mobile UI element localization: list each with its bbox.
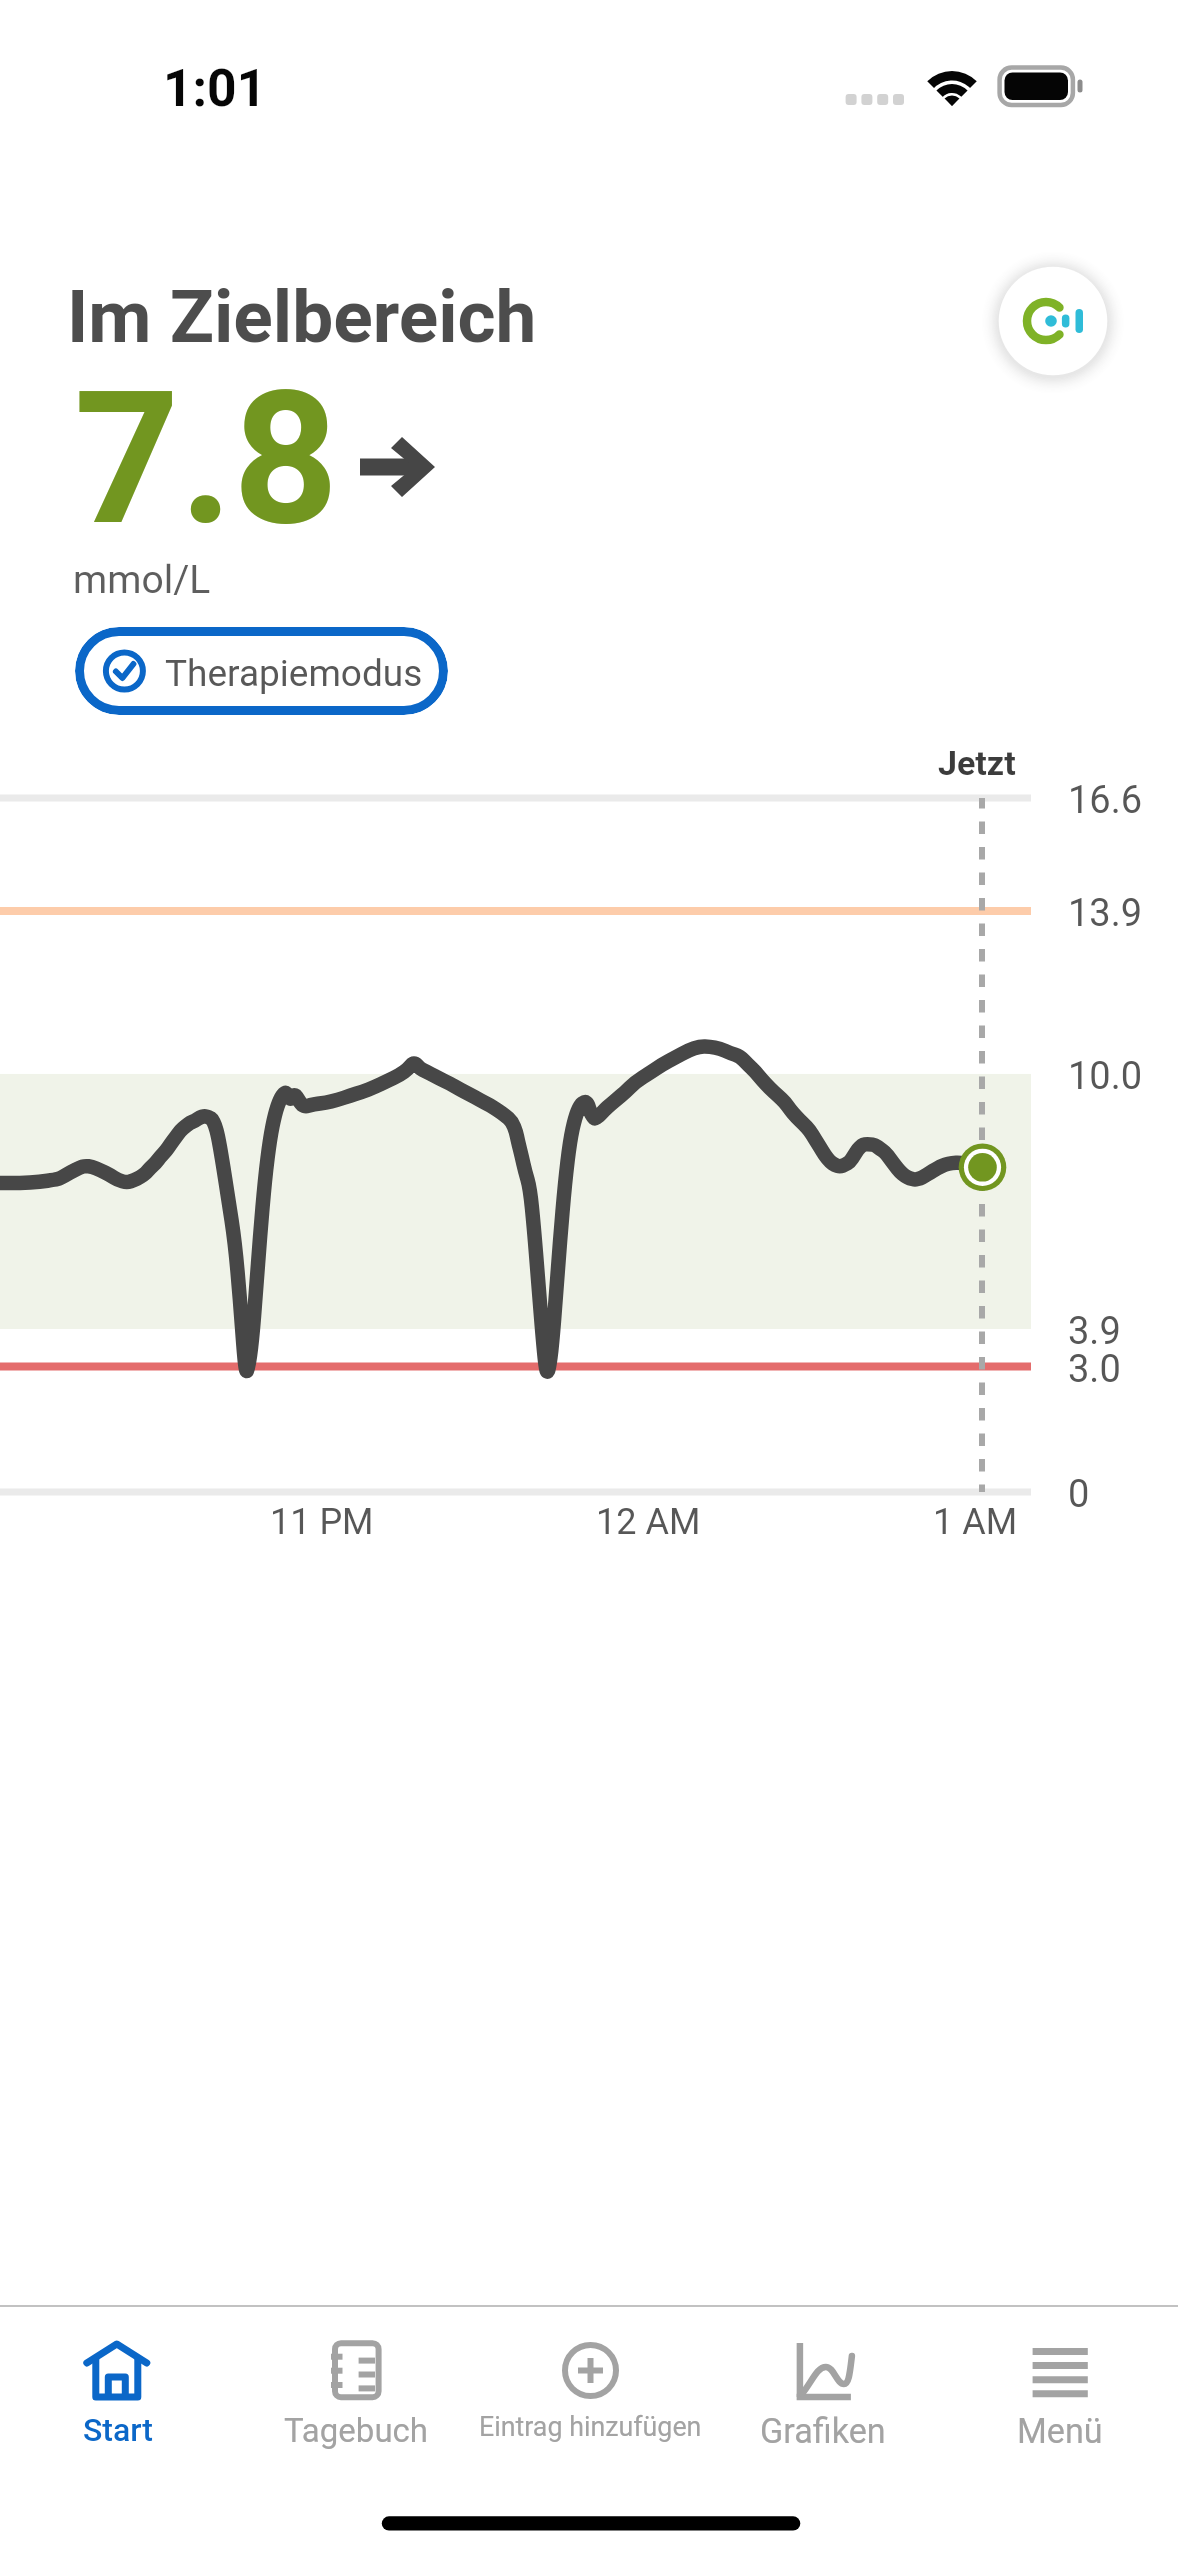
button[interactable]	[706, 2310, 938, 2476]
staticText: Menü	[1017, 2411, 1103, 2451]
staticText: Grafiken	[760, 2411, 886, 2451]
button[interactable]	[4, 2310, 236, 2476]
staticText: 12 AM	[596, 1501, 701, 1543]
staticText: mmol/L	[73, 557, 211, 603]
staticText: Therapiemodus	[165, 652, 423, 695]
staticText: 13.9	[1068, 891, 1143, 936]
button[interactable]	[75, 627, 448, 715]
button[interactable]: Sensor status	[983, 251, 1123, 391]
staticText: 1:01	[163, 58, 267, 118]
staticText: 16.6	[1068, 778, 1143, 823]
staticText: 7.8	[74, 351, 339, 567]
staticText: 3.9	[1068, 1309, 1121, 1354]
staticText: Jetzt	[938, 743, 1016, 783]
staticText: Start	[83, 2411, 153, 2449]
button[interactable]	[938, 2310, 1174, 2476]
staticText: 10.0	[1068, 1054, 1143, 1099]
staticText: 11 PM	[270, 1501, 374, 1543]
staticText: 3.0	[1068, 1347, 1121, 1392]
staticText: Im Zielbereich	[67, 274, 537, 360]
staticText: Eintrag hinzufügen	[479, 2411, 702, 2442]
staticText: Tagebuch	[284, 2411, 429, 2450]
staticText: 0	[1068, 1472, 1090, 1517]
button[interactable]	[474, 2310, 706, 2476]
staticText: 1 AM	[933, 1501, 1018, 1543]
button[interactable]	[236, 2310, 474, 2476]
